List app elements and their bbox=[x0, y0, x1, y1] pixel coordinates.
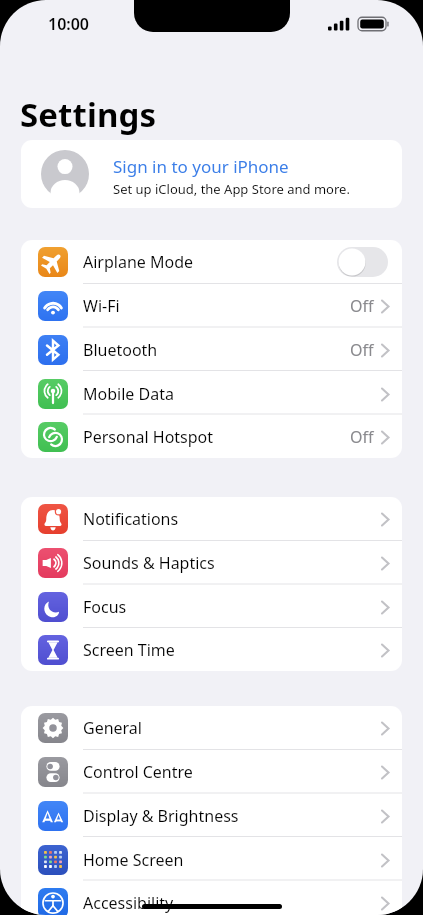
button[interactable]: Notifications bbox=[21, 497, 402, 541]
button[interactable]: Airplane Mode toggle bbox=[337, 247, 388, 277]
button[interactable]: Wi-Fi bbox=[21, 284, 402, 328]
button[interactable]: Display & Brightness bbox=[21, 794, 402, 838]
button[interactable]: Home Screen bbox=[21, 838, 402, 882]
button[interactable]: Bluetooth bbox=[21, 328, 402, 372]
staticText: Airplane Mode bbox=[83, 251, 194, 273]
staticText: Personal Hotspot bbox=[83, 426, 214, 448]
button[interactable]: General bbox=[21, 706, 402, 750]
staticText: Accessibility bbox=[83, 892, 174, 914]
staticText: Mobile Data bbox=[83, 383, 174, 405]
staticText: Home Screen bbox=[83, 849, 184, 871]
staticText: Off bbox=[350, 339, 374, 361]
button[interactable]: Sounds & Haptics bbox=[21, 541, 402, 585]
staticText: General bbox=[83, 717, 142, 739]
staticText: Sounds & Haptics bbox=[83, 552, 215, 574]
button[interactable]: Accessibility bbox=[21, 882, 402, 915]
staticText: Sign in to your iPhone bbox=[113, 155, 289, 178]
staticText: Off bbox=[350, 295, 374, 317]
button[interactable]: Screen Time bbox=[21, 629, 402, 671]
staticText: Display & Brightness bbox=[83, 805, 239, 827]
staticText: Settings bbox=[20, 92, 157, 137]
staticText: Focus bbox=[83, 596, 127, 618]
staticText: Wi-Fi bbox=[83, 295, 120, 317]
button[interactable]: Sign in to your iPhone bbox=[21, 140, 402, 208]
button[interactable]: Personal Hotspot bbox=[21, 416, 402, 458]
button[interactable]: Control Centre bbox=[21, 750, 402, 794]
staticText: 10:00 bbox=[48, 13, 90, 35]
button[interactable]: Mobile Data bbox=[21, 372, 402, 416]
staticText: Bluetooth bbox=[83, 339, 158, 361]
staticText: Set up iCloud, the App Store and more. bbox=[113, 180, 350, 198]
staticText: Notifications bbox=[83, 508, 179, 530]
staticText: Screen Time bbox=[83, 639, 175, 661]
button[interactable]: Focus bbox=[21, 585, 402, 629]
button[interactable]: Airplane Mode bbox=[21, 240, 402, 284]
staticText: Control Centre bbox=[83, 761, 193, 783]
staticText: Off bbox=[350, 426, 374, 448]
